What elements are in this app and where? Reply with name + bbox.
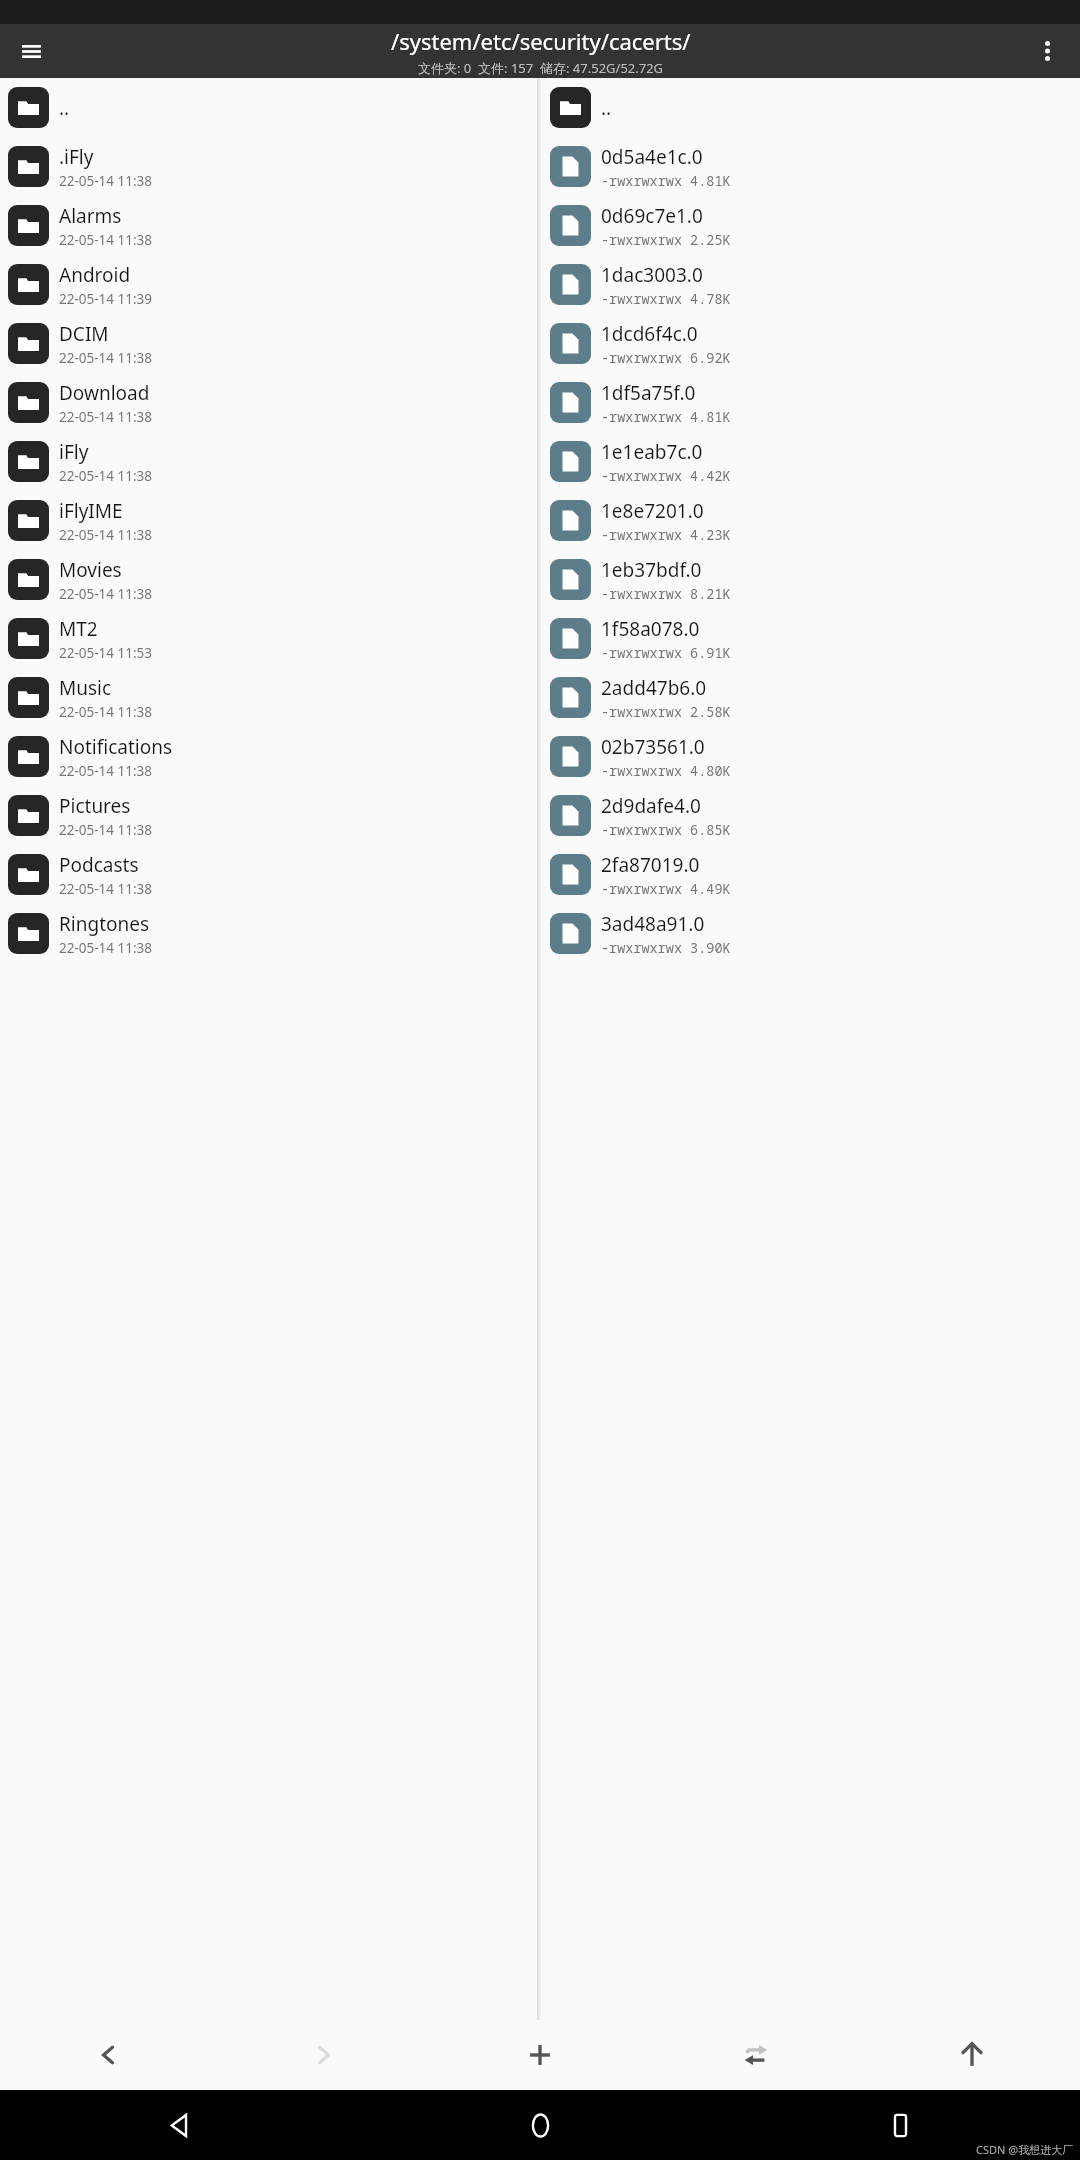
staticText: Podcasts bbox=[59, 852, 139, 878]
staticText: 22-05-14 11:38 bbox=[59, 408, 153, 426]
staticText: 3ad48a91.0 bbox=[601, 911, 705, 937]
staticText: -rwxrwxrwx 2.58K bbox=[601, 703, 731, 721]
staticText: 22-05-14 11:38 bbox=[59, 821, 153, 839]
staticText: 22-05-14 11:38 bbox=[59, 172, 153, 190]
staticText: 1e1eab7c.0 bbox=[601, 439, 703, 465]
staticText: Movies bbox=[59, 557, 122, 583]
staticText: 0d5a4e1c.0 bbox=[601, 144, 703, 170]
staticText: 22-05-14 11:38 bbox=[59, 762, 153, 780]
button[interactable]: MT2 bbox=[0, 609, 537, 668]
button[interactable]: Pictures bbox=[0, 786, 537, 845]
staticText: -rwxrwxrwx 6.91K bbox=[601, 644, 731, 662]
staticText: -rwxrwxrwx 6.85K bbox=[601, 821, 731, 839]
button[interactable]: Download bbox=[0, 373, 537, 432]
button[interactable]: Menu bbox=[8, 28, 54, 74]
staticText: -rwxrwxrwx 4.80K bbox=[601, 762, 731, 780]
staticText: -rwxrwxrwx 4.23K bbox=[601, 526, 731, 544]
button[interactable]: 0d69c7e1.0 bbox=[542, 196, 1080, 255]
staticText: 22-05-14 11:39 bbox=[59, 290, 153, 308]
staticText: iFly bbox=[59, 439, 89, 465]
button[interactable]: DCIM bbox=[0, 314, 537, 373]
staticText: 文件夹: 0 文件: 157 储存: 47.52G/52.72G bbox=[418, 59, 664, 77]
button[interactable]: .. bbox=[542, 78, 1080, 137]
staticText: 22-05-14 11:38 bbox=[59, 231, 153, 249]
button[interactable]: Swap panes bbox=[648, 2020, 864, 2090]
button[interactable]: 1eb37bdf.0 bbox=[542, 550, 1080, 609]
staticText: Ringtones bbox=[59, 911, 150, 937]
staticText: CSDN @我想进大厂 bbox=[976, 2142, 1074, 2157]
button[interactable]: 1e8e7201.0 bbox=[542, 491, 1080, 550]
button[interactable]: Notifications bbox=[0, 727, 537, 786]
staticText: -rwxrwxrwx 4.78K bbox=[601, 290, 731, 308]
button[interactable]: Movies bbox=[0, 550, 537, 609]
button[interactable]: iFlyIME bbox=[0, 491, 537, 550]
button[interactable]: 1f58a078.0 bbox=[542, 609, 1080, 668]
button[interactable]: 1dcd6f4c.0 bbox=[542, 314, 1080, 373]
button[interactable]: .iFly bbox=[0, 137, 537, 196]
button[interactable]: 02b73561.0 bbox=[542, 727, 1080, 786]
staticText: Pictures bbox=[59, 793, 131, 819]
staticText: 22-05-14 11:38 bbox=[59, 880, 153, 898]
button[interactable]: 3ad48a91.0 bbox=[542, 904, 1080, 963]
staticText: iFlyIME bbox=[59, 498, 123, 524]
button[interactable]: .. bbox=[0, 78, 537, 137]
button[interactable]: 2add47b6.0 bbox=[542, 668, 1080, 727]
staticText: 22-05-14 11:53 bbox=[59, 644, 153, 662]
staticText: -rwxrwxrwx 4.81K bbox=[601, 408, 731, 426]
staticText: Notifications bbox=[59, 734, 173, 760]
staticText: -rwxrwxrwx 4.81K bbox=[601, 172, 731, 190]
button[interactable]: Up bbox=[864, 2020, 1080, 2090]
staticText: 1df5a75f.0 bbox=[601, 380, 696, 406]
button[interactable]: Music bbox=[0, 668, 537, 727]
staticText: 22-05-14 11:38 bbox=[59, 526, 153, 544]
staticText: -rwxrwxrwx 2.25K bbox=[601, 231, 731, 249]
staticText: 22-05-14 11:38 bbox=[59, 467, 153, 485]
staticText: Android bbox=[59, 262, 131, 288]
staticText: -rwxrwxrwx 3.90K bbox=[601, 939, 731, 957]
button[interactable]: Android bbox=[0, 255, 537, 314]
button[interactable]: 2fa87019.0 bbox=[542, 845, 1080, 904]
staticText: 1e8e7201.0 bbox=[601, 498, 704, 524]
staticText: 2d9dafe4.0 bbox=[601, 793, 701, 819]
button[interactable]: Back bbox=[0, 2090, 360, 2160]
button[interactable]: Add bbox=[432, 2020, 648, 2090]
staticText: 1eb37bdf.0 bbox=[601, 557, 702, 583]
button[interactable]: 0d5a4e1c.0 bbox=[542, 137, 1080, 196]
button[interactable]: 2d9dafe4.0 bbox=[542, 786, 1080, 845]
staticText: -rwxrwxrwx 8.21K bbox=[601, 585, 731, 603]
staticText: Download bbox=[59, 380, 150, 406]
button[interactable]: iFly bbox=[0, 432, 537, 491]
staticText: .. bbox=[601, 95, 612, 121]
staticText: Music bbox=[59, 675, 112, 701]
staticText: DCIM bbox=[59, 321, 109, 347]
staticText: 22-05-14 11:38 bbox=[59, 585, 153, 603]
staticText: 2add47b6.0 bbox=[601, 675, 707, 701]
staticText: 1f58a078.0 bbox=[601, 616, 700, 642]
staticText: 1dcd6f4c.0 bbox=[601, 321, 698, 347]
button[interactable]: 1dac3003.0 bbox=[542, 255, 1080, 314]
button[interactable]: Back bbox=[0, 2020, 216, 2090]
staticText: 0d69c7e1.0 bbox=[601, 203, 703, 229]
staticText: -rwxrwxrwx 4.42K bbox=[601, 467, 731, 485]
button[interactable]: More options bbox=[1024, 28, 1070, 74]
button[interactable]: 1e1eab7c.0 bbox=[542, 432, 1080, 491]
staticText: -rwxrwxrwx 4.49K bbox=[601, 880, 731, 898]
button[interactable]: Alarms bbox=[0, 196, 537, 255]
button[interactable]: Home bbox=[360, 2090, 720, 2160]
staticText: 22-05-14 11:38 bbox=[59, 703, 153, 721]
button[interactable]: 1df5a75f.0 bbox=[542, 373, 1080, 432]
staticText: -rwxrwxrwx 6.92K bbox=[601, 349, 731, 367]
staticText: 22-05-14 11:38 bbox=[59, 939, 153, 957]
staticText: 22-05-14 11:38 bbox=[59, 349, 153, 367]
staticText: /system/etc/security/cacerts/ bbox=[391, 26, 691, 56]
button[interactable]: Recent apps bbox=[720, 2090, 1080, 2160]
button[interactable]: Podcasts bbox=[0, 845, 537, 904]
staticText: MT2 bbox=[59, 616, 98, 642]
staticText: .iFly bbox=[59, 144, 94, 170]
staticText: .. bbox=[59, 95, 70, 121]
staticText: 02b73561.0 bbox=[601, 734, 705, 760]
staticText: 2fa87019.0 bbox=[601, 852, 700, 878]
button[interactable]: Ringtones bbox=[0, 904, 537, 963]
staticText: Alarms bbox=[59, 203, 122, 229]
